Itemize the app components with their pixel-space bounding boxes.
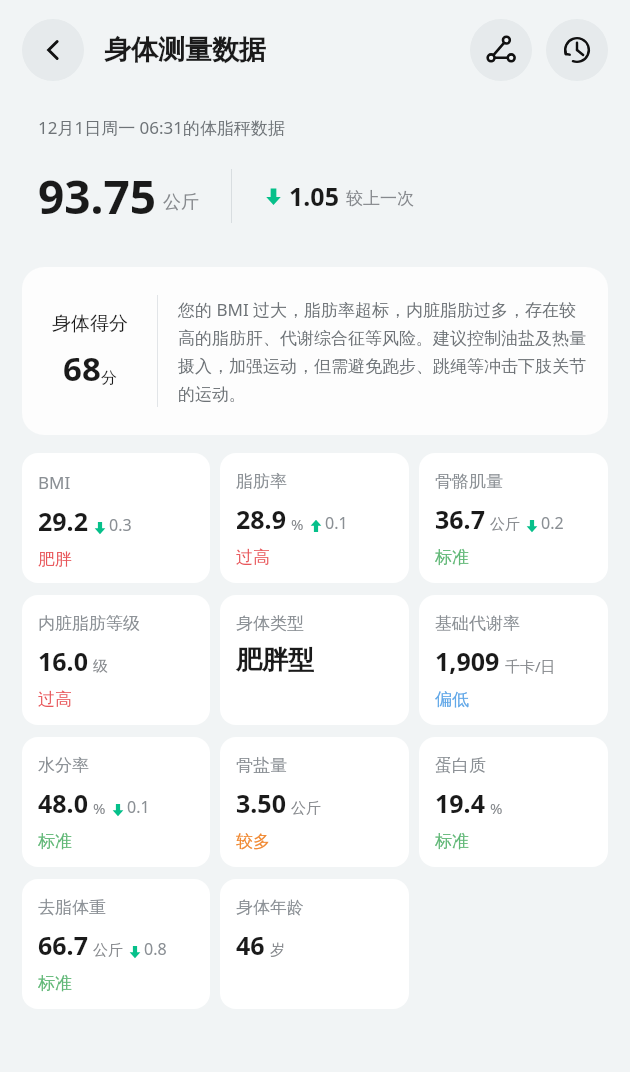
button[interactable]: 内脏脂肪等级 — [22, 595, 210, 725]
staticText: 级 — [93, 657, 108, 676]
staticText: 偏低 — [435, 689, 469, 710]
button[interactable]: Share — [470, 19, 532, 81]
staticText: 标准 — [38, 973, 72, 994]
staticText: 标准 — [435, 547, 469, 568]
staticText: 3.50 — [236, 786, 286, 820]
staticText: 肥胖 — [38, 549, 72, 570]
staticText: % — [490, 798, 503, 818]
button[interactable]: 水分率 — [22, 737, 210, 867]
staticText: 0.3 — [109, 514, 132, 536]
staticText: 身体类型 — [236, 613, 304, 634]
staticText: 过高 — [236, 547, 270, 568]
staticText: 48.0 — [38, 786, 88, 820]
button[interactable]: 骨骼肌量 — [419, 453, 608, 583]
staticText: 公斤 — [163, 191, 199, 214]
staticText: 岁 — [270, 941, 285, 960]
staticText: 36.7 — [435, 502, 485, 536]
staticText: 标准 — [435, 831, 469, 852]
button[interactable]: 去脂体重 — [22, 879, 210, 1009]
button[interactable]: History — [546, 19, 608, 81]
staticText: 93.75 — [38, 165, 157, 228]
staticText: 内脏脂肪等级 — [38, 613, 140, 634]
staticText: 68 — [63, 346, 101, 391]
staticText: 12月1日周一 06:31的体脂秤数据 — [38, 116, 286, 139]
staticText: 46 — [236, 928, 265, 962]
staticText: 身体年龄 — [236, 897, 304, 918]
staticText: 16.0 — [38, 644, 88, 678]
staticText: 0.8 — [144, 938, 167, 960]
staticText: BMI — [38, 471, 71, 494]
button[interactable]: Back — [22, 19, 84, 81]
button[interactable]: BMI — [22, 453, 210, 583]
staticText: 29.2 — [38, 504, 88, 538]
button[interactable]: 身体类型 — [220, 595, 409, 725]
button[interactable]: 脂肪率 — [220, 453, 409, 583]
staticText: 0.1 — [325, 512, 348, 534]
staticText: 66.7 — [38, 928, 88, 962]
staticText: 公斤 — [490, 515, 520, 534]
staticText: 基础代谢率 — [435, 613, 520, 634]
staticText: 去脂体重 — [38, 897, 106, 918]
staticText: 公斤 — [93, 941, 123, 960]
staticText: 脂肪率 — [236, 471, 287, 492]
staticText: 蛋白质 — [435, 755, 486, 776]
staticText: 1,909 — [435, 644, 500, 678]
staticText: 较上一次 — [346, 188, 414, 209]
button[interactable]: 骨盐量 — [220, 737, 409, 867]
staticText: 身体得分 — [52, 312, 128, 336]
staticText: 0.1 — [127, 796, 150, 818]
staticText: 公斤 — [291, 799, 321, 818]
staticText: 0.2 — [541, 512, 564, 534]
staticText: 28.9 — [236, 502, 286, 536]
staticText: 较多 — [236, 831, 270, 852]
staticText: 水分率 — [38, 755, 89, 776]
staticText: % — [93, 798, 106, 818]
staticText: 1.05 — [289, 179, 339, 213]
staticText: 19.4 — [435, 786, 485, 820]
button[interactable]: 身体年龄 — [220, 879, 409, 1009]
staticText: 肥胖型 — [236, 644, 314, 677]
staticText: 身体测量数据 — [104, 33, 266, 67]
staticText: 骨骼肌量 — [435, 471, 503, 492]
button[interactable]: 基础代谢率 — [419, 595, 608, 725]
staticText: 过高 — [38, 689, 72, 710]
staticText: 标准 — [38, 831, 72, 852]
staticText: 您的 BMI 过大，脂肪率超标，内脏脂肪过多，存在较高的脂肪肝、代谢综合征等风险… — [178, 298, 592, 405]
staticText: 骨盐量 — [236, 755, 287, 776]
staticText: 分 — [101, 368, 117, 388]
button[interactable]: 身体得分 — [22, 267, 608, 435]
staticText: % — [291, 514, 304, 534]
staticText: 千卡/日 — [505, 656, 556, 676]
button[interactable]: 蛋白质 — [419, 737, 608, 867]
